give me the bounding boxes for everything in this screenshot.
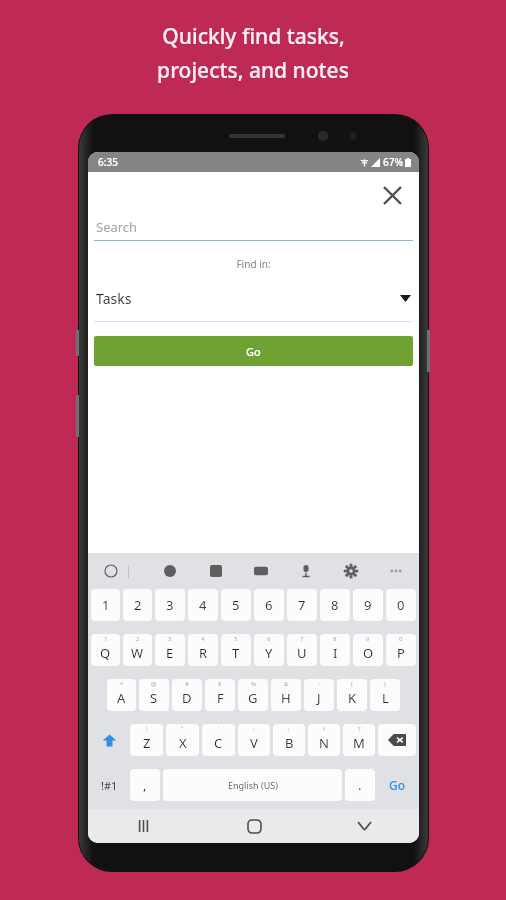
button[interactable]: - xyxy=(304,679,334,711)
button[interactable]: 0 xyxy=(386,589,416,621)
button[interactable]: & xyxy=(271,679,301,711)
button[interactable]: English (US) xyxy=(163,769,342,801)
staticText: Search xyxy=(96,218,138,236)
staticText: Go xyxy=(389,777,406,793)
button[interactable]: 3 xyxy=(155,589,185,621)
button[interactable]: 2 xyxy=(123,589,152,621)
staticText: * xyxy=(120,680,124,688)
button[interactable]: ( xyxy=(337,679,367,711)
button[interactable]: ! xyxy=(130,724,163,756)
button[interactable]: ) xyxy=(370,679,400,711)
button[interactable]: 2 xyxy=(123,634,152,666)
staticText: , xyxy=(143,776,147,794)
staticText: ; xyxy=(288,725,290,733)
button[interactable]: ' xyxy=(202,724,235,756)
button[interactable]: 4 xyxy=(188,634,218,666)
button[interactable]: " xyxy=(166,724,199,756)
staticText: / xyxy=(323,725,326,733)
staticText: V xyxy=(250,734,258,752)
button[interactable]: 7 xyxy=(287,634,317,666)
button[interactable]: Close xyxy=(377,180,407,210)
button[interactable]: Tasks xyxy=(88,289,419,322)
button[interactable]: Voice input xyxy=(295,560,317,582)
staticText: 4 xyxy=(201,635,205,643)
staticText: U xyxy=(297,644,307,662)
button[interactable]: 8 xyxy=(320,634,350,666)
button[interactable]: 1 xyxy=(91,634,120,666)
button[interactable]: 6 xyxy=(254,634,284,666)
staticText: 9 xyxy=(364,596,372,614)
staticText: 7 xyxy=(298,596,306,614)
button[interactable]: 5 xyxy=(221,634,251,666)
button[interactable]: : xyxy=(238,724,270,756)
staticText: $ xyxy=(218,680,222,688)
staticText: E xyxy=(166,644,174,662)
button[interactable]: % xyxy=(238,679,268,711)
staticText: projects, and notes xyxy=(157,56,349,85)
button[interactable]: Emoji xyxy=(159,560,181,582)
staticText: 7 xyxy=(300,635,304,643)
button[interactable]: Search xyxy=(94,218,413,241)
staticText: X xyxy=(179,734,187,752)
button[interactable]: Back xyxy=(309,809,419,843)
button[interactable]: GIF xyxy=(250,560,272,582)
staticText: Tasks xyxy=(96,289,132,308)
button[interactable]: Translate xyxy=(100,560,122,582)
button[interactable]: Backspace xyxy=(378,724,416,756)
button[interactable]: # xyxy=(172,679,202,711)
staticText: : xyxy=(253,725,255,733)
button[interactable]: 9 xyxy=(353,589,383,621)
staticText: !#1 xyxy=(101,778,118,793)
staticText: L xyxy=(382,689,389,707)
button[interactable]: Stickers xyxy=(205,560,227,582)
button[interactable]: Settings xyxy=(340,560,362,582)
staticText: K xyxy=(348,689,357,707)
button[interactable]: More options xyxy=(385,560,407,582)
staticText: I xyxy=(333,644,338,662)
staticText: A xyxy=(117,689,126,707)
button[interactable]: 0 xyxy=(386,634,416,666)
staticText: F xyxy=(217,689,224,707)
button[interactable]: , xyxy=(130,769,160,801)
button[interactable]: Go xyxy=(378,769,416,801)
staticText: ' xyxy=(218,725,220,733)
staticText: - xyxy=(318,680,320,688)
button[interactable]: 1 xyxy=(91,589,120,621)
button[interactable]: * xyxy=(107,679,136,711)
button[interactable]: 6 xyxy=(254,589,284,621)
button[interactable]: 7 xyxy=(287,589,317,621)
button[interactable]: Go xyxy=(94,336,413,366)
staticText: & xyxy=(284,680,289,688)
button[interactable]: Shift xyxy=(91,724,127,756)
staticText: ) xyxy=(384,680,386,688)
button[interactable]: 8 xyxy=(320,589,350,621)
button[interactable]: 4 xyxy=(188,589,218,621)
staticText: P xyxy=(397,644,405,662)
staticText: N xyxy=(319,734,329,752)
button[interactable]: Home xyxy=(199,809,309,843)
button[interactable]: 5 xyxy=(221,589,251,621)
button[interactable]: . xyxy=(345,769,375,801)
button[interactable]: $ xyxy=(205,679,235,711)
staticText: M xyxy=(353,734,365,752)
button[interactable]: ; xyxy=(273,724,305,756)
staticText: 6 xyxy=(265,596,273,614)
staticText: 8 xyxy=(331,596,339,614)
staticText: ( xyxy=(351,680,353,688)
staticText: . xyxy=(358,776,362,794)
button[interactable]: @ xyxy=(139,679,169,711)
button[interactable]: 3 xyxy=(155,634,185,666)
staticText: B xyxy=(285,734,294,752)
staticText: English (US) xyxy=(228,779,278,791)
staticText: 8 xyxy=(333,635,337,643)
button[interactable]: / xyxy=(308,724,340,756)
button[interactable]: !#1 xyxy=(91,769,127,801)
button[interactable]: Recents xyxy=(88,809,199,843)
button[interactable]: 9 xyxy=(353,634,383,666)
staticText: D xyxy=(182,689,192,707)
staticText: ! xyxy=(146,725,148,733)
staticText: G xyxy=(248,689,258,707)
button[interactable]: ? xyxy=(343,724,375,756)
staticText: 6 xyxy=(267,635,271,643)
staticText: J xyxy=(317,689,321,707)
